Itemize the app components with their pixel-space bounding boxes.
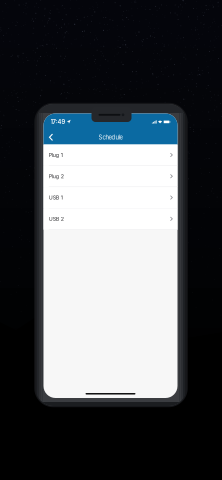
button[interactable]: USB 2 xyxy=(43,208,177,230)
staticText: Plug 1 xyxy=(49,152,63,158)
button[interactable]: Back xyxy=(43,130,58,144)
staticText: USB 1 xyxy=(49,194,63,201)
button[interactable]: Plug 1 xyxy=(43,144,177,166)
staticText: 17:49 xyxy=(50,118,65,125)
staticText: Plug 2 xyxy=(49,173,64,179)
staticText: Schedule xyxy=(98,134,122,141)
staticText: USB 2 xyxy=(49,216,64,222)
button[interactable]: USB 1 xyxy=(43,187,177,208)
button[interactable]: Plug 2 xyxy=(43,166,177,187)
